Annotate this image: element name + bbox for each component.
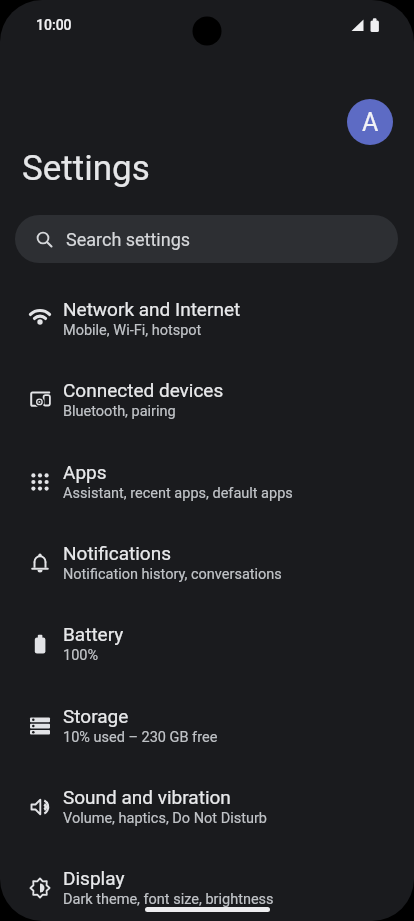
staticText: Notifications <box>63 542 172 564</box>
staticText: Sound and vibration <box>63 786 231 808</box>
staticText: Mobile, Wi-Fi, hotspot <box>63 322 202 339</box>
staticText: Storage <box>63 705 129 727</box>
button[interactable]: Battery <box>0 603 414 684</box>
button[interactable]: Network and Internet <box>0 278 414 359</box>
staticText: Volume, haptics, Do Not Disturb <box>63 810 268 827</box>
button[interactable]: Search settings <box>15 215 398 263</box>
staticText: Settings <box>22 148 150 189</box>
staticText: Battery <box>63 623 124 645</box>
button[interactable]: Apps <box>0 441 414 522</box>
staticText: Connected devices <box>63 379 224 401</box>
staticText: Assistant, recent apps, default apps <box>63 485 293 502</box>
staticText: Bluetooth, pairing <box>63 403 176 420</box>
button[interactable]: A <box>347 99 393 145</box>
staticText: A <box>362 108 379 137</box>
staticText: 10% used – 230 GB free <box>63 729 218 746</box>
staticText: Display <box>63 867 125 889</box>
staticText: Network and Internet <box>63 298 241 320</box>
button[interactable]: Notifications <box>0 522 414 603</box>
staticText: 10:00 <box>36 17 72 33</box>
staticText: Apps <box>63 461 107 483</box>
button[interactable]: Display <box>0 847 414 921</box>
staticText: 100% <box>63 647 99 664</box>
staticText: Notification history, conversations <box>63 566 282 583</box>
staticText: Dark theme, font size, brightness <box>63 891 274 908</box>
button[interactable]: Sound and vibration <box>0 766 414 847</box>
button[interactable]: Storage <box>0 685 414 766</box>
staticText: Search settings <box>66 229 191 250</box>
button[interactable]: Connected devices <box>0 359 414 440</box>
